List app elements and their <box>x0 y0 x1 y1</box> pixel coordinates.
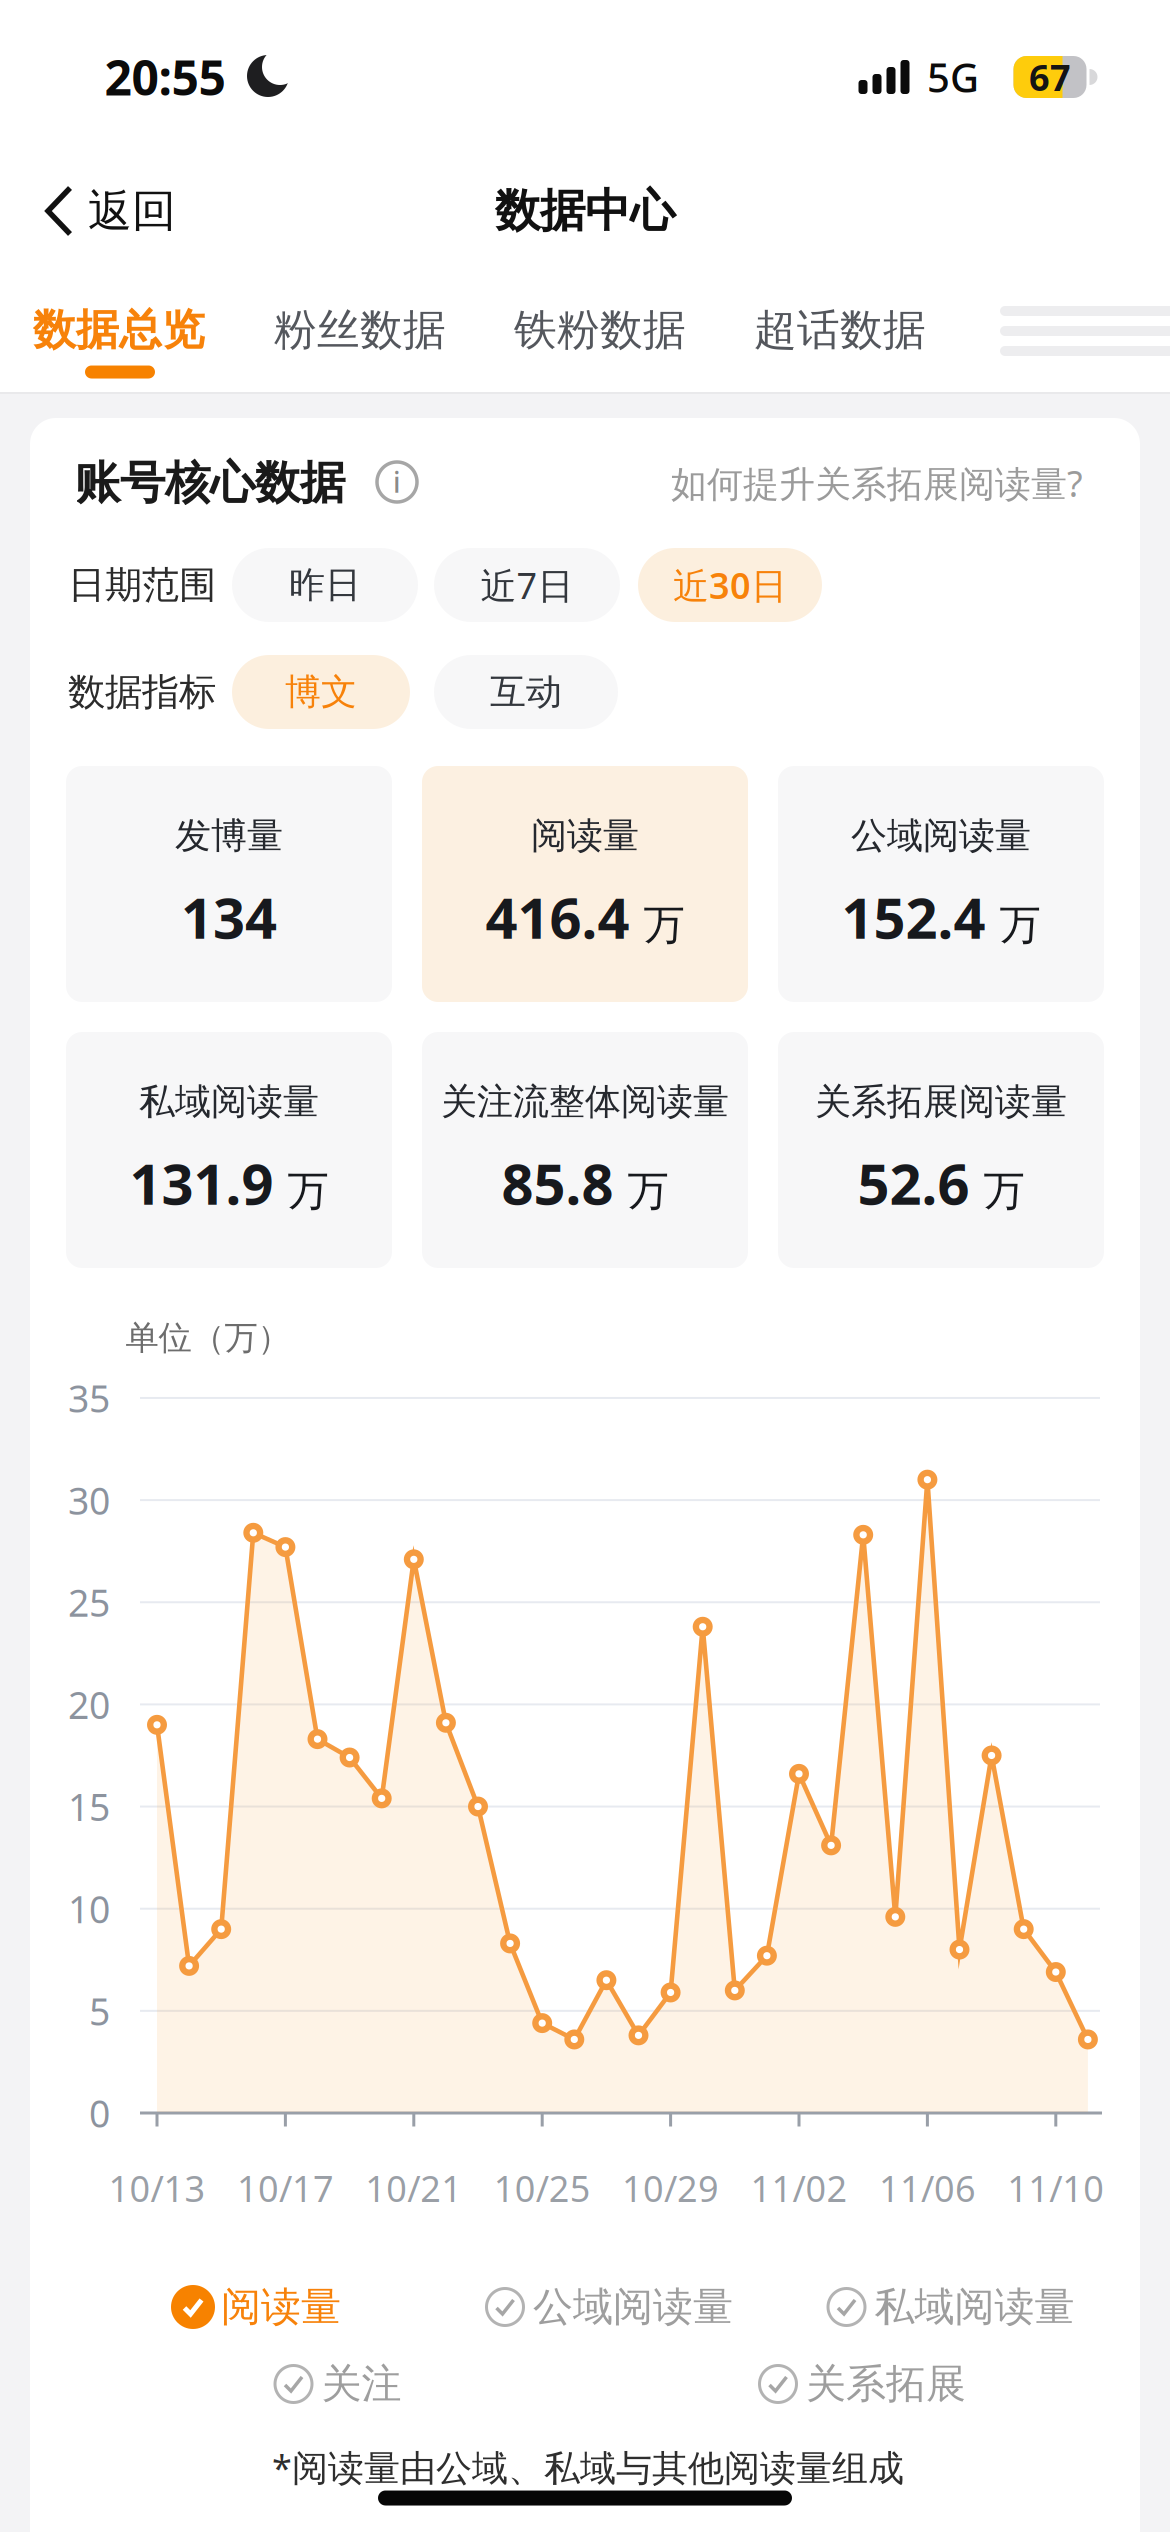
staticText: *阅读量由公域、私域与其他阅读量组成 <box>272 2443 904 2491</box>
staticText: 5G <box>927 50 979 103</box>
staticText: 10/17 <box>237 2164 334 2212</box>
staticText: 如何提升关系拓展阅读量? <box>671 459 1083 507</box>
staticText: 关系拓展阅读量 <box>815 1080 1067 1124</box>
staticText: 15 <box>68 1782 110 1831</box>
staticText: 万 <box>287 1166 328 1216</box>
staticText: 关注 <box>321 2359 401 2408</box>
staticText: 万 <box>983 1166 1024 1216</box>
staticText: 关系拓展 <box>806 2359 966 2408</box>
button[interactable]: 粉丝数据 <box>274 304 446 356</box>
button[interactable]: 发博量 <box>66 766 392 1002</box>
staticText: 134 <box>181 880 277 954</box>
staticText: 万 <box>627 1166 668 1216</box>
staticText: 公域阅读量 <box>533 2282 733 2331</box>
staticText: 单位（万） <box>125 1317 290 1358</box>
staticText: 11/02 <box>750 2164 847 2212</box>
staticText: 10 <box>68 1884 110 1934</box>
staticText: 5 <box>89 1986 110 2036</box>
staticText: 131.9 <box>129 1146 273 1220</box>
button[interactable]: 私域阅读量 <box>824 2282 1074 2331</box>
staticText: 近30日 <box>673 561 787 609</box>
button[interactable]: 如何提升关系拓展阅读量? <box>671 459 1083 507</box>
staticText: 20 <box>68 1680 110 1729</box>
staticText: 67 <box>1029 53 1071 101</box>
staticText: 日期范围 <box>68 562 216 608</box>
staticText: 公域阅读量 <box>851 814 1031 858</box>
button[interactable]: 近30日 <box>638 548 822 622</box>
button[interactable]: 数据总览 <box>33 304 205 356</box>
button[interactable]: 阅读量 <box>171 2282 341 2331</box>
button[interactable]: 昨日 <box>232 548 418 622</box>
staticText: 数据中心 <box>495 183 675 239</box>
staticText: 25 <box>68 1577 110 1627</box>
staticText: 11/10 <box>1007 2164 1104 2212</box>
button[interactable]: 私域阅读量 <box>66 1032 392 1268</box>
staticText: 私域阅读量 <box>139 1080 319 1124</box>
staticText: 10/21 <box>365 2164 462 2212</box>
staticText: 0 <box>89 2088 110 2138</box>
staticText: 账号核心数据 <box>75 455 345 511</box>
staticText: 416.4 <box>485 880 629 954</box>
staticText: 85.8 <box>501 1146 613 1220</box>
staticText: 昨日 <box>289 563 361 607</box>
button[interactable]: 阅读量 <box>422 766 748 1002</box>
staticText: 10/13 <box>108 2164 205 2212</box>
button[interactable]: 关注流整体阅读量 <box>422 1032 748 1268</box>
staticText: 阅读量 <box>221 2282 341 2331</box>
staticText: 10/25 <box>494 2164 591 2212</box>
button[interactable]: 公域阅读量 <box>483 2282 733 2331</box>
button[interactable]: 近7日 <box>434 548 620 622</box>
staticText: 11/06 <box>879 2164 976 2212</box>
button[interactable]: 铁粉数据 <box>514 304 686 356</box>
staticText: 超话数据 <box>754 304 926 356</box>
button[interactable]: 超话数据 <box>754 304 926 356</box>
button[interactable]: 博文 <box>232 655 410 729</box>
staticText: 近7日 <box>480 561 573 609</box>
staticText: 私域阅读量 <box>874 2282 1074 2331</box>
staticText: i <box>393 463 401 501</box>
staticText: 35 <box>68 1373 110 1423</box>
button[interactable]: 关系拓展 <box>756 2359 966 2408</box>
staticText: 粉丝数据 <box>274 304 446 356</box>
staticText: 数据指标 <box>68 669 216 715</box>
staticText: 数据总览 <box>33 304 205 356</box>
staticText: 20:55 <box>104 45 225 109</box>
staticText: 万 <box>643 900 684 950</box>
staticText: 返回 <box>88 184 176 238</box>
staticText: 铁粉数据 <box>514 304 686 356</box>
staticText: 阅读量 <box>531 814 639 858</box>
staticText: 发博量 <box>175 814 283 858</box>
staticText: 152.4 <box>841 880 985 954</box>
staticText: 万 <box>999 900 1040 950</box>
button[interactable]: 关系拓展阅读量 <box>778 1032 1104 1268</box>
staticText: 52.6 <box>857 1146 969 1220</box>
button[interactable]: i <box>375 460 419 504</box>
staticText: 互动 <box>490 670 562 714</box>
staticText: 关注流整体阅读量 <box>441 1080 729 1124</box>
staticText: 10/29 <box>622 2164 719 2212</box>
staticText: 博文 <box>285 670 357 714</box>
button[interactable]: 公域阅读量 <box>778 766 1104 1002</box>
button[interactable]: 互动 <box>434 655 618 729</box>
button[interactable]: 返回 <box>44 184 176 238</box>
staticText: 30 <box>68 1475 110 1525</box>
button[interactable]: 关注 <box>271 2359 401 2408</box>
